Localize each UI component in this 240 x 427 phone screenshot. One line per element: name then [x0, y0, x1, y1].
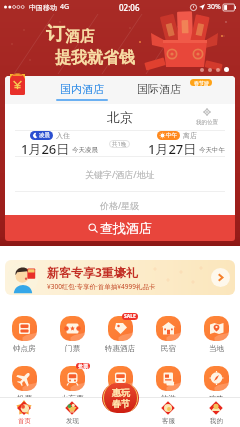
staticText: 中国移动 [29, 3, 57, 12]
button[interactable]: 旅游 [144, 366, 192, 403]
staticText: 凌晨 [39, 132, 50, 139]
button[interactable]: 民宿 [144, 316, 192, 353]
button[interactable]: 客服 [144, 397, 192, 425]
staticText: 共1晚 [112, 140, 127, 148]
button[interactable]: 价格/星级 [5, 192, 235, 218]
button[interactable]: 凌晨 [21, 131, 109, 156]
staticText: 1月27日 [148, 140, 197, 156]
staticText: 今天中午 [199, 146, 225, 154]
staticText: 离店 [183, 131, 197, 140]
button[interactable]: 攻略 [192, 366, 240, 403]
staticText: ¥300红包·专享价·首单抽¥4999礼品卡 [47, 282, 156, 291]
button[interactable]: 首页 [0, 397, 48, 425]
staticText: 02:06 [119, 2, 140, 13]
staticText: 订 [46, 22, 65, 46]
staticText: 30% [207, 2, 221, 12]
staticText: 关键字/酒店/地址 [85, 168, 155, 180]
staticText: 玩 [121, 387, 130, 398]
staticText: 火车票 [61, 394, 84, 403]
staticText: 价格/星级 [100, 199, 140, 211]
staticText: 4G [60, 2, 70, 12]
other: 查看更多 [211, 268, 230, 287]
button[interactable]: 新客专享3重壕礼 [5, 260, 235, 295]
staticText: 酒店 [65, 27, 94, 45]
button[interactable]: 我的 [192, 397, 240, 425]
staticText: 门票 [65, 344, 80, 353]
button[interactable]: 国际酒店 [137, 82, 181, 96]
staticText: 我的位置 [196, 119, 218, 126]
button[interactable]: 发现 [48, 397, 96, 425]
button[interactable]: 钟点房 [0, 316, 48, 353]
button[interactable]: 中午 [148, 131, 235, 156]
button[interactable]: SALE [96, 316, 144, 353]
staticText: 特惠酒店 [105, 344, 135, 353]
button[interactable]: 我的位置 [196, 108, 218, 126]
staticText: 发现 [66, 417, 79, 425]
button[interactable]: 关键字/酒店/地址 [5, 157, 235, 191]
staticText: 春 [112, 398, 121, 409]
staticText: 当地 [209, 344, 224, 353]
staticText: 提我就省钱 [55, 48, 135, 68]
button[interactable]: 国内酒店 [56, 82, 108, 101]
staticText: 查找酒店 [100, 220, 152, 236]
staticText: 国际酒店 [137, 82, 181, 96]
button[interactable]: 机票 [0, 366, 48, 403]
staticText: SALE [124, 313, 136, 320]
staticText: 抢票 [78, 363, 88, 369]
staticText: 中午 [166, 132, 177, 139]
staticText: 春节游 [194, 80, 209, 86]
staticText: 北京 [107, 109, 133, 125]
button[interactable]: 查找酒店 [5, 215, 235, 241]
button[interactable]: 惠玩春节 [102, 383, 139, 413]
staticText: 首页 [18, 417, 31, 425]
staticText: 钟点房 [13, 344, 36, 353]
button[interactable]: 红包 [10, 71, 25, 95]
staticText: 1月26日 [21, 140, 70, 156]
staticText: 惠 [112, 387, 121, 398]
staticText: 旅游 [161, 394, 176, 403]
button[interactable]: 汽车票 [96, 366, 144, 403]
button[interactable]: 北京 [5, 104, 235, 130]
button[interactable]: 抢票 [48, 366, 96, 403]
staticText: 民宿 [161, 344, 176, 353]
staticText: 我的 [210, 417, 223, 425]
staticText: 入住 [56, 131, 70, 140]
staticText: 新客专享3重壕礼 [47, 264, 138, 280]
staticText: 攻略 [209, 394, 224, 403]
staticText: 汽车票 [109, 394, 132, 403]
button[interactable]: 当地 [192, 316, 240, 353]
staticText: 客服 [162, 417, 175, 425]
staticText: 节 [121, 398, 130, 409]
button[interactable]: 门票 [48, 316, 96, 353]
staticText: 机票 [17, 394, 32, 403]
staticText: 国内酒店 [60, 82, 104, 96]
staticText: 今天凌晨 [72, 146, 98, 154]
